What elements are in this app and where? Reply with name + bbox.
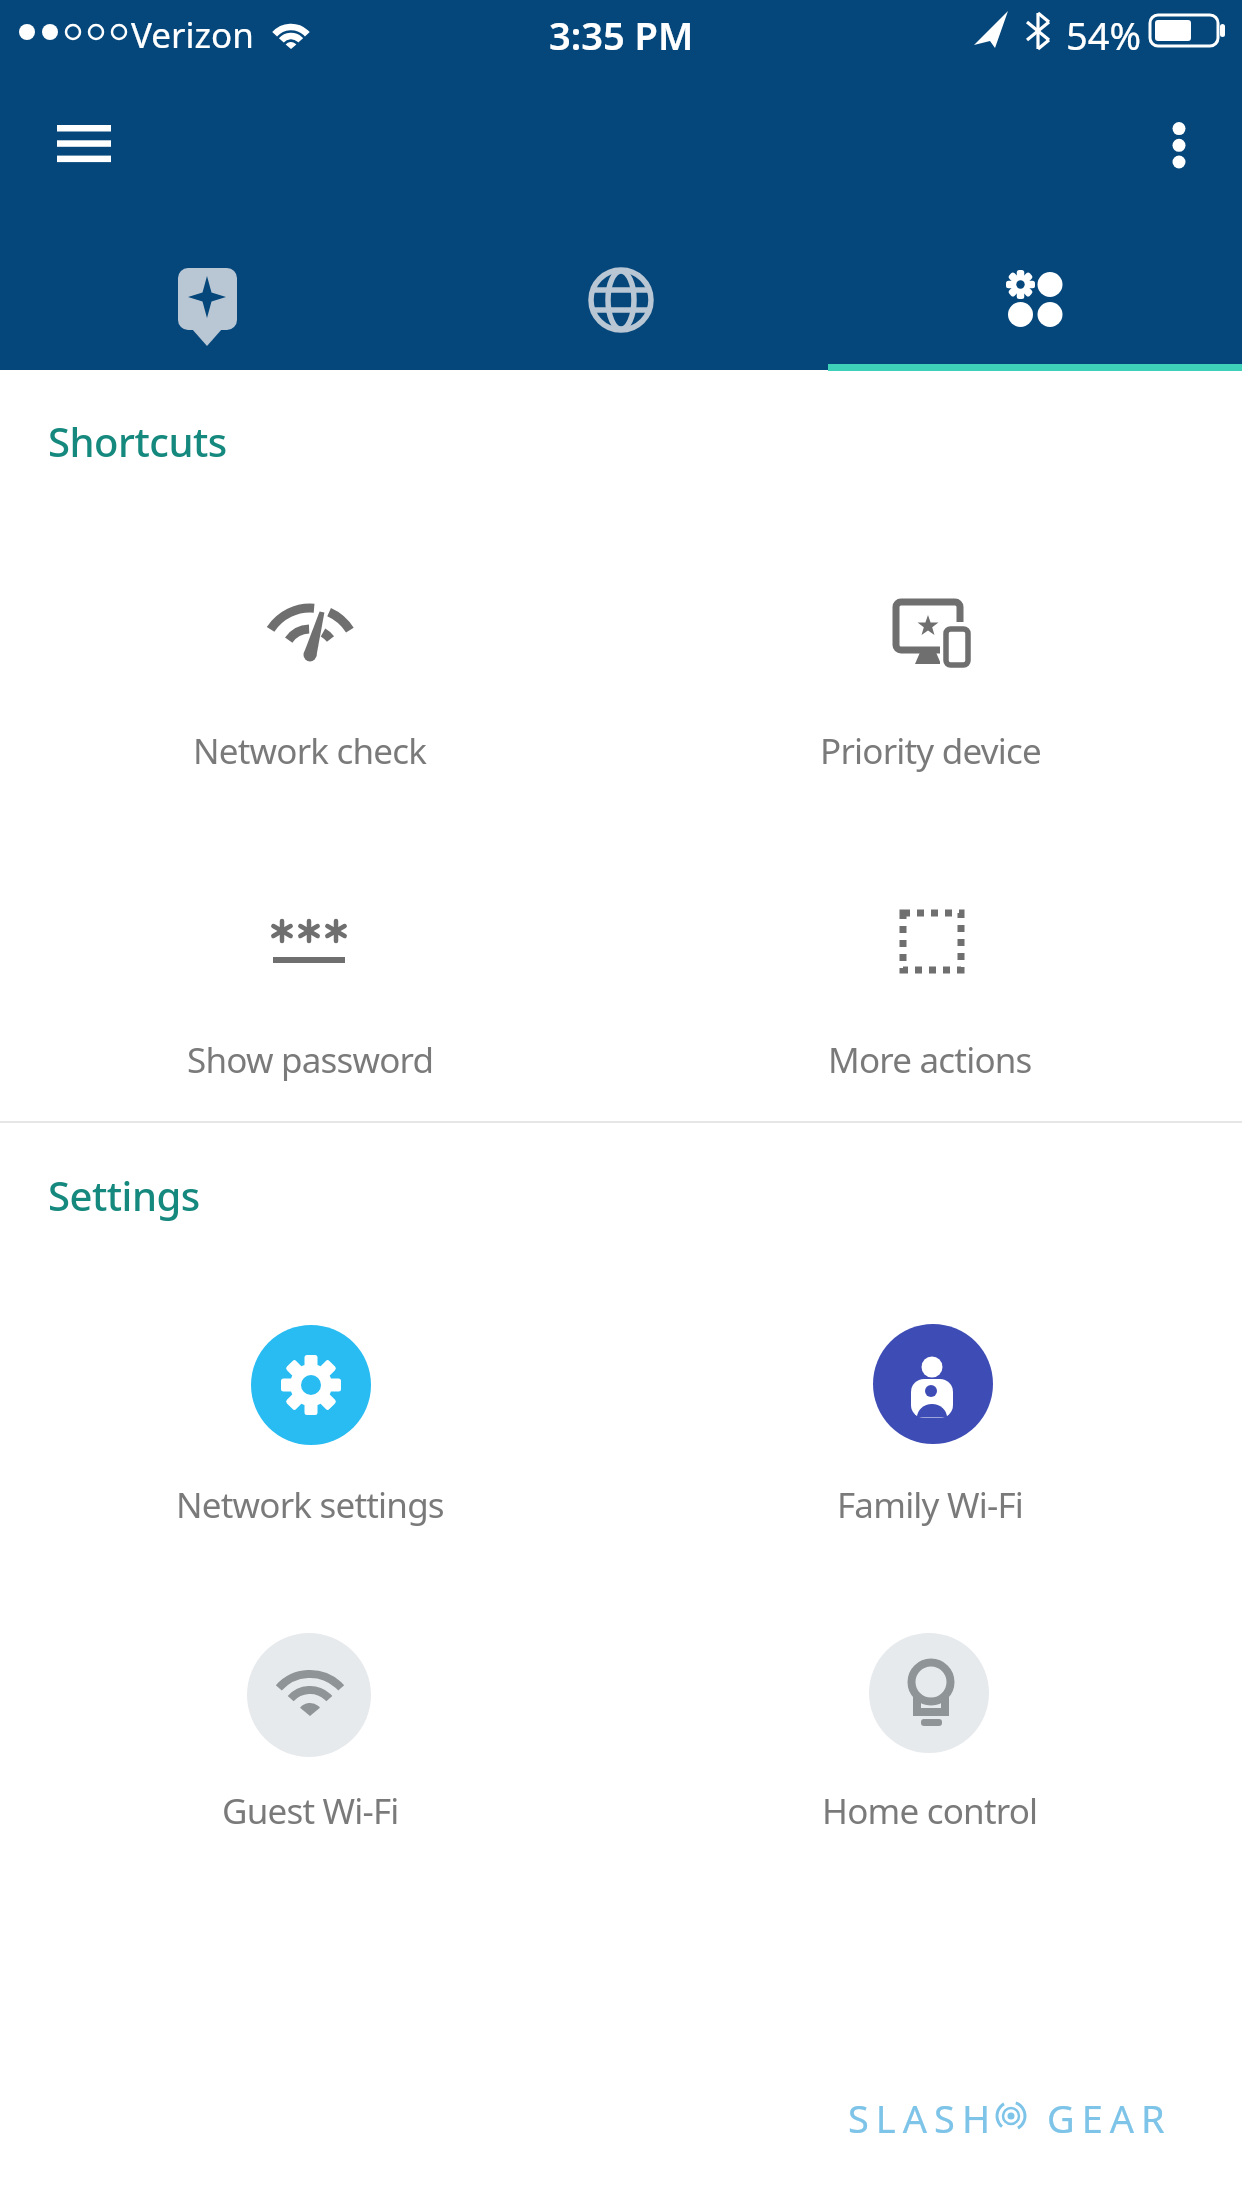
button[interactable] bbox=[0, 870, 621, 1110]
staticText: Shortcuts bbox=[48, 414, 227, 468]
button[interactable] bbox=[621, 560, 1242, 810]
staticText: Home control bbox=[822, 1787, 1038, 1835]
button[interactable] bbox=[0, 1310, 621, 1540]
button[interactable] bbox=[1145, 100, 1225, 190]
staticText: SLASH bbox=[848, 2092, 998, 2140]
staticText: Family Wi-Fi bbox=[837, 1481, 1023, 1529]
button[interactable] bbox=[621, 1310, 1242, 1540]
button[interactable] bbox=[414, 230, 828, 370]
staticText: Network settings bbox=[176, 1481, 444, 1529]
staticText: Verizon bbox=[131, 11, 254, 53]
button[interactable] bbox=[0, 1620, 621, 1850]
staticText: More actions bbox=[828, 1036, 1032, 1084]
button[interactable] bbox=[621, 1620, 1242, 1850]
button[interactable] bbox=[621, 870, 1242, 1110]
staticText: Guest Wi-Fi bbox=[222, 1787, 399, 1835]
button[interactable] bbox=[0, 230, 414, 370]
staticText: GEAR bbox=[1047, 2092, 1172, 2140]
staticText: Show password bbox=[187, 1036, 434, 1084]
staticText: 54% bbox=[1066, 9, 1142, 55]
staticText: 3:35 PM bbox=[549, 9, 694, 55]
staticText: Priority device bbox=[820, 727, 1041, 775]
staticText: Settings bbox=[48, 1168, 200, 1222]
staticText: Network check bbox=[193, 727, 427, 775]
button[interactable] bbox=[828, 230, 1242, 370]
button[interactable] bbox=[40, 105, 130, 185]
button[interactable] bbox=[0, 560, 621, 810]
